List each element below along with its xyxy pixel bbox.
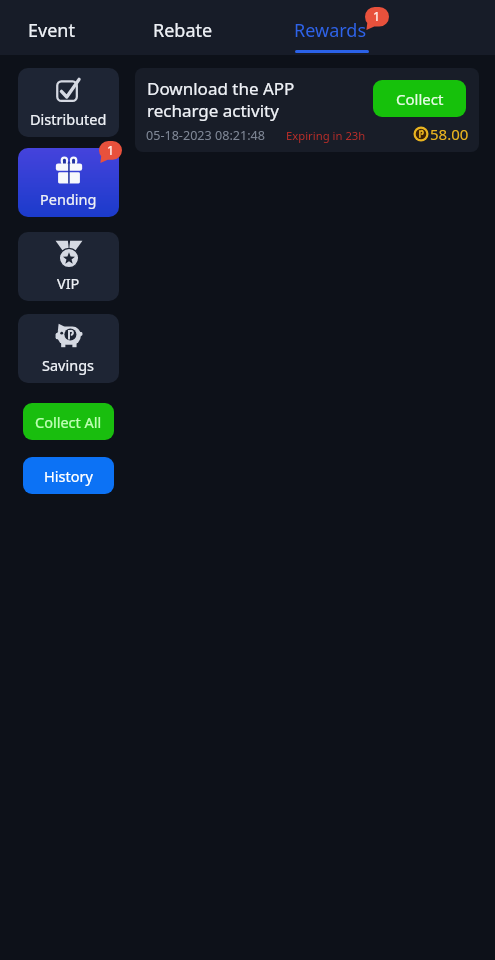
button[interactable]: Rewards [280, 0, 382, 55]
staticText: Rewards [294, 18, 366, 43]
staticText: Collect All [35, 412, 102, 432]
staticText: 58.00 [430, 124, 469, 144]
button[interactable]: Event [14, 0, 89, 55]
button[interactable]: Download the APP [135, 68, 479, 152]
staticText: Collect [396, 89, 444, 109]
button[interactable]: VIP [18, 232, 119, 301]
staticText: Download the APP [147, 77, 295, 100]
staticText: VIP [57, 273, 80, 293]
staticText: Pending [40, 189, 97, 209]
staticText: Rebate [153, 18, 213, 43]
staticText: recharge activity [147, 99, 279, 122]
button[interactable]: Collect [373, 80, 466, 117]
button[interactable]: Pending [18, 148, 119, 217]
staticText: Distributed [30, 109, 107, 129]
staticText: Savings [42, 355, 95, 375]
staticText: Expiring in 23h [286, 128, 366, 143]
staticText: 05-18-2023 08:21:48 [146, 127, 265, 144]
staticText: Event [28, 18, 75, 43]
button[interactable]: History [23, 457, 114, 494]
staticText: 1 [373, 8, 381, 25]
button[interactable]: Distributed [18, 68, 119, 137]
button[interactable]: Savings [18, 314, 119, 383]
button[interactable]: Collect All [23, 403, 114, 440]
button[interactable]: Rebate [139, 0, 227, 55]
staticText: 1 [107, 142, 115, 159]
staticText: History [44, 466, 93, 486]
